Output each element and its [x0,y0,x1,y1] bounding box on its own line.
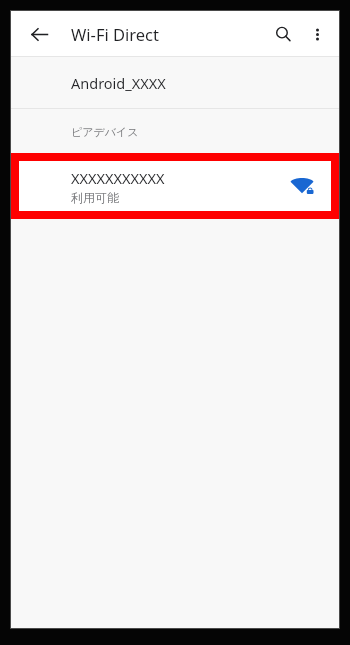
button[interactable]: More options [300,17,334,51]
button[interactable]: Search [266,17,300,51]
staticText: XXXXXXXXXXX [71,168,165,188]
button[interactable]: XXXXXXXXXXX [19,161,331,211]
button[interactable]: Back [22,17,56,51]
staticText: Wi-Fi Direct [71,23,159,45]
staticText: Android_XXXX [71,73,166,93]
button[interactable]: Android_XXXX [11,57,339,108]
staticText: 利用可能 [71,190,119,205]
staticText: ピアデバイス [71,125,139,139]
